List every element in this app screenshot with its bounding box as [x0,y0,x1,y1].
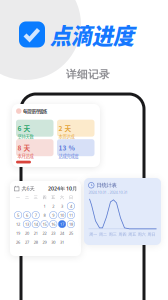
staticText: 四 [42,195,46,200]
staticText: 达成完成度 [58,153,78,159]
staticText: 周四 [118,232,126,237]
staticText: 28 [34,239,38,245]
staticText: 五 [51,195,55,200]
staticText: 27 [25,239,29,245]
staticText: 每周坚持锻炼 [23,108,47,114]
staticText: 12 [16,221,20,227]
staticText: 20 [25,230,29,236]
staticText: 周三 [109,232,117,237]
staticText: 本周达成 [58,133,74,139]
staticText: 21 [34,230,38,236]
staticText: 25 [69,230,73,236]
staticText: 13 [25,221,29,227]
staticText: 17 [60,221,64,227]
staticText: 11 [69,212,73,218]
staticText: 日 [69,195,73,200]
staticText: 16 [51,221,55,227]
staticText: 坚持天数 [17,133,33,139]
staticText: 日统计表 [97,182,117,189]
staticText: 一 [16,195,20,200]
staticText: 23 [51,230,55,236]
staticText: 4 [70,203,72,209]
staticText: 22 [42,230,46,236]
staticText: 31 [60,239,64,245]
staticText: 三 [34,195,38,200]
staticText: 24 [60,230,64,236]
staticText: 15 [42,221,46,227]
staticText: 周二 [99,232,107,237]
staticText: 18 [69,221,73,227]
staticText: 1 [43,203,45,209]
staticText: 二 [25,195,29,200]
staticText: 周日 [147,232,155,237]
button[interactable]: 点滴进度 [19,19,134,50]
staticText: 周六 [138,232,146,237]
staticText: 六 [60,195,64,200]
staticText: 6 [26,212,28,218]
staticText: 3 [61,203,63,209]
staticText: 2 [52,203,54,209]
staticText: 13 % [58,143,74,152]
staticText: 14 [34,221,38,227]
staticText: 6 天 [17,123,30,133]
staticText: 周五 [128,232,136,237]
staticText: 7 [35,212,37,218]
staticText: 2 天 [58,123,71,133]
staticText: 5 [17,212,19,218]
staticText: 详细记录 [66,68,110,81]
staticText: 点滴进度 [50,19,134,50]
staticText: 8 天 [17,143,30,152]
staticText: 29 [42,239,46,245]
staticText: 19 [16,230,20,236]
staticText: 26 [16,239,20,245]
staticText: 本月达成 [17,153,33,159]
staticText: 30 [51,239,55,245]
staticText: 周一 [89,232,97,237]
staticText: 2024年 10月 [48,185,77,192]
staticText: 9 [52,212,54,218]
staticText: 2024.10.01 - 2024.10.31 [88,190,127,195]
staticText: 共6天 [21,185,34,192]
staticText: 10 [60,212,64,218]
staticText: 8 [43,212,45,218]
